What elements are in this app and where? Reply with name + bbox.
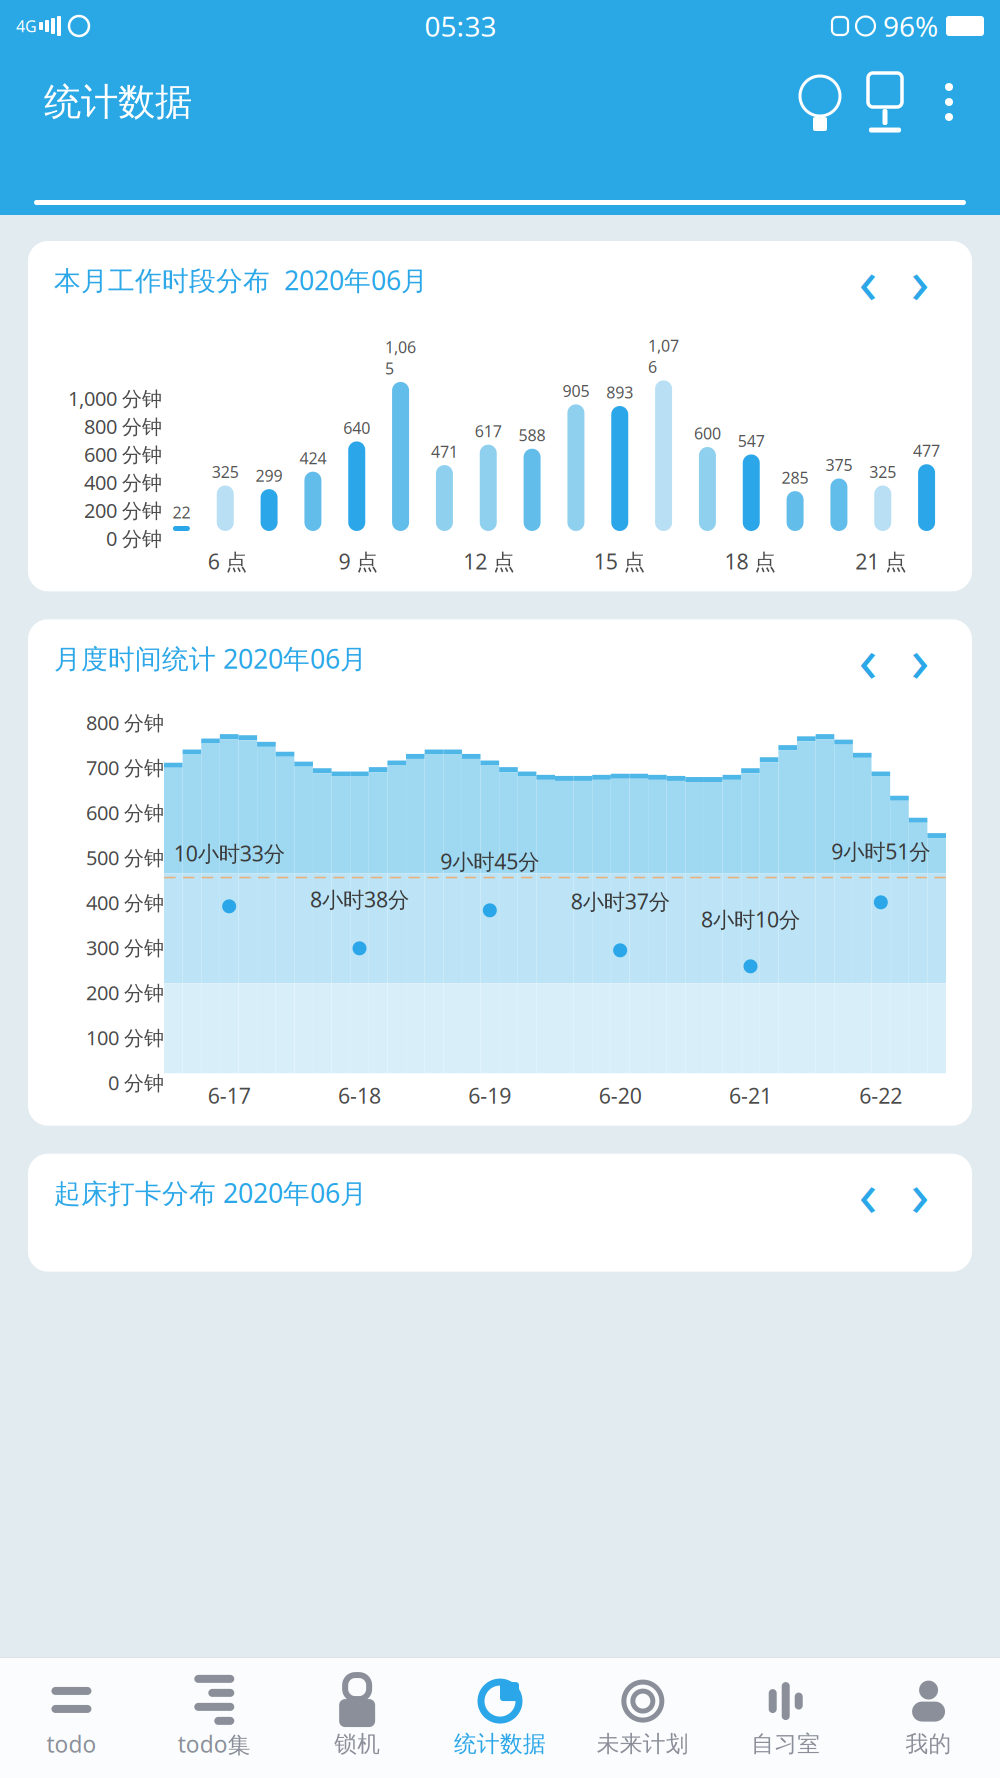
staticText: 617 bbox=[475, 420, 502, 442]
staticText: 18 点 bbox=[724, 547, 775, 575]
staticText: 6-19 bbox=[468, 1081, 511, 1110]
staticText: 905 bbox=[562, 380, 589, 401]
button[interactable]: todo集 bbox=[143, 1663, 286, 1773]
staticText: 285 bbox=[782, 467, 809, 488]
staticText: 471 bbox=[431, 441, 458, 462]
staticText: 统计数据 bbox=[454, 1730, 546, 1758]
staticText: 300 分钟 bbox=[86, 934, 164, 961]
staticText: 299 bbox=[256, 465, 283, 486]
staticText: 893 bbox=[606, 382, 633, 403]
staticText: 我的 bbox=[906, 1730, 952, 1758]
staticText: 0 分钟 bbox=[106, 525, 162, 551]
staticText: 统计数据 bbox=[44, 79, 192, 125]
button[interactable]: 上一页 bbox=[842, 636, 894, 680]
staticText: 4G bbox=[16, 15, 37, 37]
button[interactable]: 下一页 bbox=[894, 258, 946, 302]
staticText: 10小时33分 bbox=[174, 839, 285, 867]
button[interactable]: 上一页 bbox=[842, 1171, 894, 1215]
staticText: 96% bbox=[883, 7, 938, 45]
staticText: 400 分钟 bbox=[86, 889, 164, 916]
staticText: 800 分钟 bbox=[86, 709, 164, 736]
staticText: 8小时37分 bbox=[571, 887, 670, 915]
button[interactable]: 上一页 bbox=[842, 258, 894, 302]
staticText: 200 分钟 bbox=[86, 979, 164, 1006]
staticText: 月度时间统计 2020年06月 bbox=[54, 641, 367, 676]
staticText: 9小时51分 bbox=[831, 837, 930, 865]
staticText: todo bbox=[46, 1729, 96, 1759]
staticText: 9 点 bbox=[338, 547, 377, 575]
staticText: 自习室 bbox=[751, 1730, 820, 1758]
staticText: 588 bbox=[519, 424, 546, 446]
staticText: 200 分钟 bbox=[84, 497, 162, 523]
staticText: 起床打卡分布 2020年06月 bbox=[54, 1175, 367, 1210]
staticText: 325 bbox=[869, 461, 896, 482]
staticText: 0 分钟 bbox=[108, 1069, 164, 1096]
staticText: 6-21 bbox=[729, 1081, 772, 1110]
staticText: ‹ bbox=[858, 618, 877, 699]
staticText: 100 分钟 bbox=[86, 1024, 164, 1051]
staticText: 424 bbox=[299, 447, 326, 469]
button[interactable]: 我的 bbox=[857, 1664, 1000, 1772]
staticText: 500 分钟 bbox=[86, 844, 164, 871]
staticText: 6-20 bbox=[599, 1081, 642, 1110]
staticText: 8小时10分 bbox=[701, 905, 800, 933]
staticText: 6-22 bbox=[859, 1081, 902, 1110]
staticText: 600 bbox=[694, 423, 721, 444]
staticText: 05:33 bbox=[424, 7, 496, 45]
staticText: todo集 bbox=[178, 1729, 251, 1759]
staticText: 15 点 bbox=[594, 547, 645, 575]
staticText: 6 点 bbox=[208, 547, 247, 575]
staticText: 1,000 分钟 bbox=[68, 385, 162, 411]
staticText: 未来计划 bbox=[597, 1730, 689, 1758]
staticText: 6-18 bbox=[338, 1081, 381, 1110]
staticText: 6-17 bbox=[208, 1081, 251, 1110]
staticText: 800 分钟 bbox=[84, 413, 162, 439]
staticText: 12 点 bbox=[463, 547, 514, 575]
button[interactable]: 统计数据 bbox=[429, 1664, 571, 1772]
staticText: 325 bbox=[212, 461, 239, 482]
button[interactable]: 下一页 bbox=[894, 1171, 946, 1215]
staticText: 375 bbox=[825, 454, 852, 475]
button[interactable]: 成就 bbox=[852, 65, 918, 139]
staticText: 477 bbox=[913, 440, 940, 461]
button[interactable]: 未来计划 bbox=[571, 1664, 714, 1772]
staticText: 640 bbox=[343, 417, 370, 438]
staticText: 锁机 bbox=[334, 1730, 380, 1758]
button[interactable]: 锁机 bbox=[286, 1664, 429, 1772]
staticText: 22 bbox=[172, 502, 190, 523]
staticText: 1,065 bbox=[385, 336, 416, 379]
button[interactable]: 更多 bbox=[918, 65, 980, 139]
staticText: 400 分钟 bbox=[84, 469, 162, 495]
staticText: ‹ bbox=[858, 239, 877, 321]
staticText: 本月工作时段分布 2020年06月 bbox=[54, 262, 428, 298]
button[interactable]: 历史记录 bbox=[788, 65, 852, 139]
staticText: 547 bbox=[738, 430, 765, 451]
staticText: 1,076 bbox=[648, 335, 679, 377]
staticText: 21 点 bbox=[855, 547, 906, 575]
staticText: 600 分钟 bbox=[86, 799, 164, 826]
staticText: › bbox=[910, 1152, 929, 1233]
staticText: 9小时45分 bbox=[440, 847, 539, 875]
button[interactable]: 下一页 bbox=[894, 636, 946, 680]
staticText: 8小时38分 bbox=[310, 885, 409, 913]
staticText: 700 分钟 bbox=[86, 754, 164, 781]
staticText: 600 分钟 bbox=[84, 441, 162, 467]
staticText: › bbox=[910, 618, 929, 699]
button[interactable]: 自习室 bbox=[714, 1664, 857, 1772]
button[interactable]: todo bbox=[0, 1663, 143, 1773]
staticText: › bbox=[910, 239, 929, 321]
staticText: ‹ bbox=[858, 1152, 877, 1233]
